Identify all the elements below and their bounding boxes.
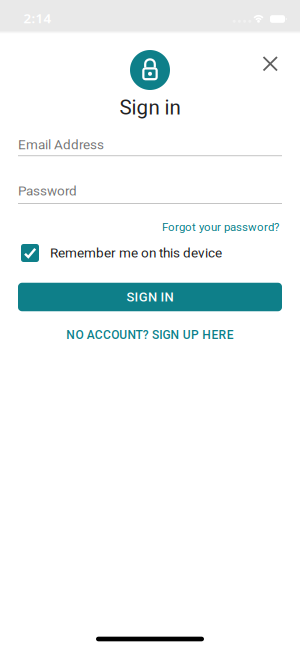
staticText: 2:14 xyxy=(23,9,51,27)
button[interactable]: Password xyxy=(18,180,282,214)
button[interactable]: SIGN IN xyxy=(18,283,282,311)
button[interactable]: Email Address xyxy=(18,134,282,168)
staticText: Email Address xyxy=(18,137,104,153)
staticText: NO ACCOUNT? SIGN UP HERE xyxy=(66,328,234,342)
button[interactable]: Remember me on this device xyxy=(21,240,285,266)
staticText: Forgot your password? xyxy=(162,220,279,234)
button[interactable]: Close xyxy=(255,49,285,79)
staticText: SIGN IN xyxy=(126,289,174,305)
staticText: Sign in xyxy=(119,95,180,119)
button[interactable]: Forgot your password? xyxy=(162,220,279,234)
staticText: Password xyxy=(18,183,77,199)
staticText: Remember me on this device xyxy=(50,245,222,261)
button[interactable]: NO ACCOUNT? SIGN UP HERE xyxy=(66,328,234,342)
